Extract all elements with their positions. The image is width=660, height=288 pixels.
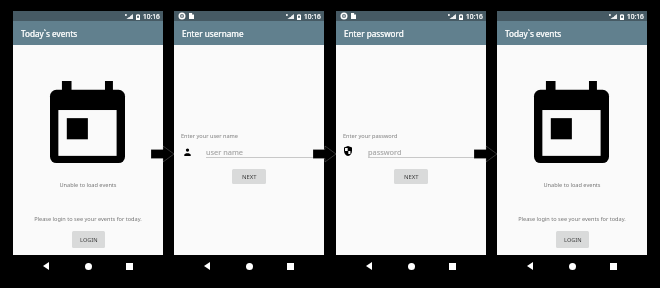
other: Next step [474,146,497,162]
button[interactable]: Home [76,257,100,275]
staticText: Enter password [344,28,404,39]
staticText: Please login to see your events for toda… [13,215,163,223]
button[interactable]: NEXT [394,169,428,184]
staticText: Enter your password [343,132,398,140]
button[interactable]: Home [237,257,261,275]
staticText: 10:16 [627,12,644,21]
staticText: Today`s events [21,28,78,39]
button[interactable]: LOGIN [72,231,105,248]
staticText: 10:16 [304,12,321,21]
other: Next step [151,146,174,162]
button[interactable]: Recent apps [440,257,464,275]
button[interactable]: user name [206,144,314,158]
staticText: Please login to see your events for toda… [497,215,647,223]
staticText: password [368,147,402,157]
staticText: LOGIN [80,236,98,244]
button[interactable]: Back [357,257,381,275]
staticText: Unable to load events [497,181,647,189]
other: Next step [313,146,336,162]
button[interactable]: password [368,144,476,158]
button[interactable]: Home [399,257,423,275]
staticText: 10:16 [143,12,160,21]
button[interactable]: Recent apps [601,257,625,275]
button[interactable]: Home [560,257,584,275]
button[interactable]: Back [195,257,219,275]
staticText: 10:16 [466,12,483,21]
staticText: Enter username [182,28,244,39]
button[interactable]: LOGIN [556,231,589,248]
staticText: LOGIN [564,236,582,244]
button[interactable]: Back [34,257,58,275]
button[interactable]: Back [518,257,542,275]
staticText: Today`s events [505,28,562,39]
staticText: Unable to load events [13,181,163,189]
staticText: NEXT [404,173,419,181]
button[interactable]: Recent apps [278,257,302,275]
staticText: Enter your user name [181,132,239,140]
staticText: NEXT [242,173,257,181]
staticText: user name [206,147,244,157]
button[interactable]: NEXT [232,169,266,184]
button[interactable]: Recent apps [117,257,141,275]
